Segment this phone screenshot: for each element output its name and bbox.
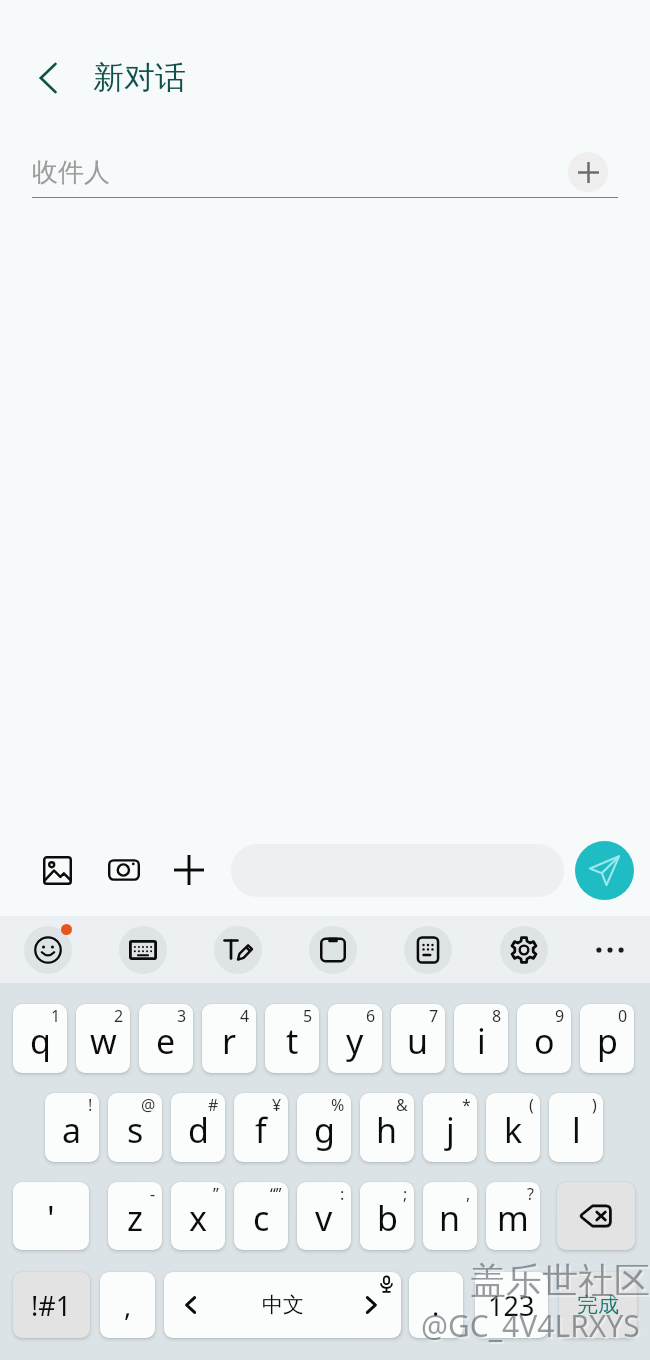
staticText: 0: [618, 1005, 628, 1027]
staticText: m: [497, 1195, 529, 1241]
staticText: 6: [366, 1005, 376, 1027]
button[interactable]: j: [423, 1093, 477, 1162]
staticText: e: [156, 1018, 176, 1064]
button[interactable]: Add recipient: [568, 152, 608, 192]
button[interactable]: Clipboard: [309, 926, 357, 974]
staticText: 8: [492, 1005, 502, 1027]
button[interactable]: Handwriting: [214, 926, 262, 974]
staticText: 9: [555, 1005, 565, 1027]
button[interactable]: Gallery: [29, 842, 85, 898]
staticText: l: [572, 1107, 581, 1153]
button[interactable]: ': [13, 1182, 89, 1250]
button[interactable]: c: [234, 1182, 288, 1250]
button[interactable]: Backspace: [557, 1182, 635, 1250]
staticText: 盖乐世社区: [472, 1260, 650, 1305]
button[interactable]: k: [486, 1093, 540, 1162]
button[interactable]: v: [297, 1182, 351, 1250]
staticText: 3: [177, 1005, 187, 1027]
button[interactable]: Keyboard: [119, 926, 167, 974]
staticText: b: [377, 1195, 398, 1241]
staticText: p: [597, 1018, 618, 1064]
button[interactable]: z: [108, 1182, 162, 1250]
staticText: c: [253, 1195, 270, 1241]
button[interactable]: n: [423, 1182, 477, 1250]
staticText: 2: [114, 1005, 124, 1027]
button[interactable]: ,: [100, 1272, 155, 1338]
staticText: &: [396, 1094, 408, 1116]
staticText: “”: [270, 1183, 282, 1205]
button[interactable]: !#1: [13, 1272, 90, 1338]
button[interactable]: x: [171, 1182, 225, 1250]
button[interactable]: Settings: [500, 926, 548, 974]
button[interactable]: Camera: [96, 842, 152, 898]
button[interactable]: i: [454, 1004, 508, 1073]
staticText: g: [314, 1107, 335, 1153]
button[interactable]: a: [45, 1093, 99, 1162]
button[interactable]: l: [549, 1093, 603, 1162]
button[interactable]: t: [265, 1004, 319, 1073]
button[interactable]: u: [391, 1004, 445, 1073]
button[interactable]: w: [76, 1004, 130, 1073]
staticText: #: [208, 1094, 219, 1116]
staticText: %: [331, 1094, 345, 1116]
button[interactable]: q: [13, 1004, 67, 1073]
button[interactable]: r: [202, 1004, 256, 1073]
staticText: 中文: [262, 1292, 304, 1318]
button[interactable]: Emoji: [24, 926, 72, 974]
staticText: @: [141, 1094, 156, 1116]
staticText: t: [286, 1018, 299, 1064]
staticText: s: [127, 1107, 144, 1153]
staticText: 新对话: [93, 58, 186, 97]
button[interactable]: o: [517, 1004, 571, 1073]
staticText: 盖乐世社区: [470, 1258, 650, 1303]
staticText: :: [340, 1183, 345, 1205]
staticText: 完成: [577, 1292, 619, 1318]
staticText: x: [189, 1195, 207, 1241]
button[interactable]: g: [297, 1093, 351, 1162]
staticText: q: [30, 1018, 51, 1064]
button[interactable]: Send: [575, 841, 634, 900]
staticText: f: [255, 1107, 267, 1153]
staticText: (: [529, 1094, 534, 1116]
staticText: @GC_4V4LRXYS: [423, 1307, 642, 1348]
staticText: ,: [124, 1287, 132, 1324]
staticText: r: [222, 1018, 237, 1064]
button[interactable]: p: [580, 1004, 634, 1073]
button[interactable]: f: [234, 1093, 288, 1162]
button[interactable]: y: [328, 1004, 382, 1073]
staticText: 收件人: [32, 156, 110, 189]
staticText: -: [150, 1183, 156, 1205]
staticText: v: [315, 1195, 333, 1241]
staticText: ¥: [272, 1094, 282, 1116]
button[interactable]: More: [588, 928, 632, 972]
staticText: k: [504, 1107, 523, 1153]
button[interactable]: b: [360, 1182, 414, 1250]
button[interactable]: s: [108, 1093, 162, 1162]
staticText: j: [446, 1107, 455, 1153]
staticText: i: [477, 1018, 486, 1064]
staticText: ,: [466, 1183, 471, 1205]
button[interactable]: d: [171, 1093, 225, 1162]
staticText: @GC_4V4LRXYS: [421, 1305, 640, 1346]
staticText: a: [62, 1107, 82, 1153]
button[interactable]: Numbers: [404, 926, 452, 974]
staticText: y: [346, 1018, 364, 1064]
button[interactable]: Space, Chinese: [164, 1272, 401, 1338]
staticText: n: [439, 1195, 461, 1241]
staticText: *: [462, 1094, 471, 1116]
staticText: ”: [213, 1183, 219, 1205]
staticText: 123: [488, 1287, 535, 1324]
staticText: ): [592, 1094, 597, 1116]
staticText: z: [127, 1195, 143, 1241]
button[interactable]: Back: [22, 52, 74, 104]
button[interactable]: .: [409, 1272, 463, 1338]
button[interactable]: h: [360, 1093, 414, 1162]
button[interactable]: 完成: [559, 1272, 637, 1338]
button[interactable]: Add attachment: [161, 842, 217, 898]
button[interactable]: e: [139, 1004, 193, 1073]
button[interactable]: 123: [475, 1272, 548, 1338]
staticText: 1: [51, 1005, 61, 1027]
button[interactable]: m: [486, 1182, 540, 1250]
staticText: d: [188, 1107, 209, 1153]
